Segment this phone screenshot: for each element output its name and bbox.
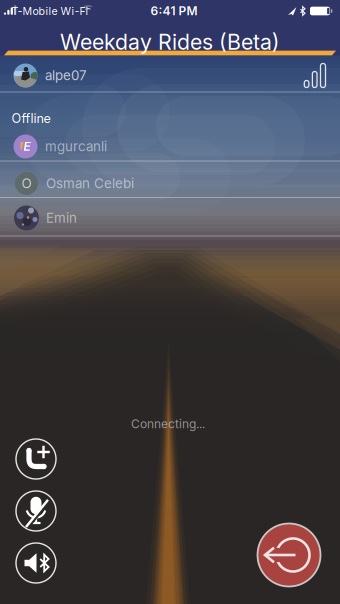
staticText: Weekday Rides (Beta)	[60, 29, 280, 55]
staticText: Osman Celebi	[46, 175, 134, 191]
button[interactable]: Mute microphone	[16, 491, 56, 531]
button[interactable]: Add call	[16, 439, 56, 479]
staticText: Connecting...	[131, 417, 205, 431]
staticText: Offline	[11, 111, 50, 126]
staticText: T-Mobile Wi-Fi	[11, 4, 88, 17]
staticText: E	[23, 139, 30, 154]
button[interactable]: E	[0, 129, 340, 163]
staticText: O	[21, 175, 31, 191]
button[interactable]: O	[0, 166, 340, 200]
staticText: alpe07	[45, 67, 87, 83]
staticText: Emin	[46, 210, 77, 226]
button[interactable]: alpe07	[0, 58, 340, 92]
button[interactable]: Leave ride	[257, 523, 320, 586]
staticText: mgurcanli	[45, 138, 107, 154]
button[interactable]: Emin	[0, 201, 340, 235]
staticText: 6:41 PM	[150, 4, 197, 18]
button[interactable]: Audio output	[16, 543, 56, 583]
